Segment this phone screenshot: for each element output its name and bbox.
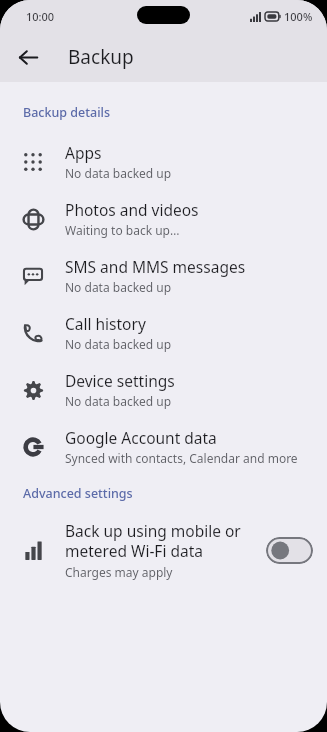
button[interactable]: Photos and videos bbox=[0, 190, 327, 247]
staticText: Device settings bbox=[65, 370, 175, 391]
staticText: Back up using mobile or metered Wi-Fi da… bbox=[65, 520, 258, 562]
staticText: No data backed up bbox=[65, 336, 172, 352]
staticText: No data backed up bbox=[65, 393, 172, 409]
staticText: Apps bbox=[65, 142, 102, 163]
staticText: Backup details bbox=[23, 104, 110, 121]
staticText: Synced with contacts, Calendar and more bbox=[65, 450, 298, 466]
staticText: Advanced settings bbox=[23, 485, 133, 502]
staticText: Charges may apply bbox=[65, 564, 173, 580]
button[interactable]: Device settings bbox=[0, 361, 327, 418]
staticText: Call history bbox=[65, 313, 146, 334]
staticText: SMS and MMS messages bbox=[65, 256, 246, 277]
staticText: 10:00 bbox=[26, 9, 55, 24]
button[interactable]: SMS and MMS messages bbox=[0, 247, 327, 304]
staticText: Photos and videos bbox=[65, 199, 199, 220]
staticText: 100% bbox=[284, 9, 313, 24]
button[interactable]: Google Account data bbox=[0, 418, 327, 475]
staticText: Waiting to back up… bbox=[65, 222, 180, 238]
staticText: No data backed up bbox=[65, 165, 172, 181]
button[interactable]: Back up using mobile or metered Wi-Fi da… bbox=[0, 512, 327, 588]
button[interactable]: Apps bbox=[0, 133, 327, 190]
button[interactable]: Call history bbox=[0, 304, 327, 361]
staticText: No data backed up bbox=[65, 279, 172, 295]
button[interactable]: Back bbox=[8, 37, 48, 77]
staticText: Backup bbox=[68, 44, 134, 70]
button[interactable]: Back up using mobile or metered Wi-Fi da… bbox=[266, 537, 313, 564]
staticText: Google Account data bbox=[65, 427, 217, 448]
